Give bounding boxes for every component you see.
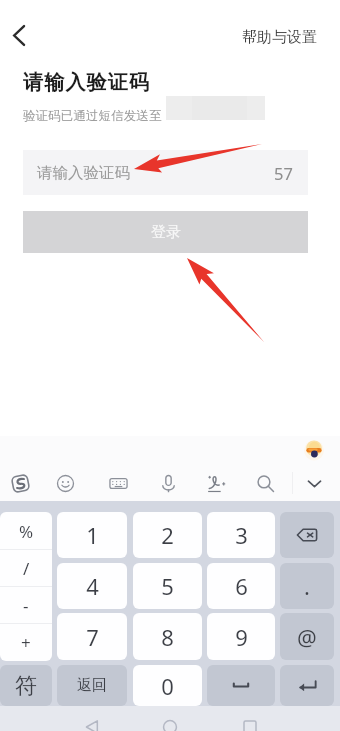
button[interactable]: Search: [249, 467, 281, 499]
staticText: 1: [86, 520, 99, 550]
button[interactable]: -: [0, 587, 52, 624]
staticText: 登录: [151, 223, 181, 242]
button[interactable]: 2: [133, 512, 202, 558]
button[interactable]: 请输入验证码: [23, 150, 308, 195]
button[interactable]: Emoji: [49, 467, 81, 499]
staticText: 57: [274, 162, 293, 184]
staticText: %: [19, 520, 34, 543]
button[interactable]: /: [0, 550, 52, 587]
button[interactable]: Home: [150, 720, 190, 731]
button[interactable]: 5: [133, 563, 202, 609]
button[interactable]: Space: [207, 665, 275, 706]
staticText: 6: [235, 571, 248, 601]
button[interactable]: Handwriting: [200, 467, 232, 499]
staticText: @: [297, 622, 317, 652]
staticText: 4: [86, 571, 99, 601]
button[interactable]: 登录: [23, 211, 308, 253]
staticText: 3: [235, 520, 248, 550]
button[interactable]: .: [280, 563, 334, 609]
button[interactable]: 符: [0, 665, 52, 706]
button[interactable]: 7: [57, 613, 127, 660]
staticText: 7: [86, 622, 99, 652]
staticText: 8: [161, 622, 174, 652]
button[interactable]: 6: [207, 563, 275, 609]
staticText: 0: [161, 671, 174, 701]
button[interactable]: 返回: [57, 665, 127, 706]
button[interactable]: 8: [133, 613, 202, 660]
button[interactable]: Keyboard: [102, 467, 134, 499]
button[interactable]: 0: [133, 665, 202, 706]
button[interactable]: Backspace: [280, 512, 334, 558]
button[interactable]: Back: [0, 13, 38, 57]
staticText: 5: [161, 571, 174, 601]
button[interactable]: @: [280, 613, 334, 660]
staticText: 返回: [77, 676, 107, 695]
button[interactable]: Voice input: [152, 467, 184, 499]
button[interactable]: Recents: [230, 721, 270, 731]
staticText: 2: [161, 520, 174, 550]
button[interactable]: Enter: [280, 665, 334, 706]
staticText: -: [23, 594, 29, 617]
button[interactable]: 1: [57, 512, 127, 558]
button[interactable]: 帮助与设置: [242, 28, 317, 47]
button[interactable]: %: [0, 512, 52, 550]
button[interactable]: Collapse keyboard: [298, 467, 330, 499]
staticText: +: [21, 631, 31, 654]
staticText: /: [23, 557, 30, 580]
button[interactable]: Sogou input: [4, 467, 36, 499]
button[interactable]: 9: [207, 613, 275, 660]
button[interactable]: 3: [207, 512, 275, 558]
staticText: 符: [15, 672, 37, 700]
staticText: 帮助与设置: [242, 28, 317, 47]
button[interactable]: 4: [57, 563, 127, 609]
staticText: 请输入验证码: [23, 70, 151, 95]
button[interactable]: Back: [72, 720, 112, 731]
button[interactable]: +: [0, 624, 52, 661]
staticText: .: [304, 571, 310, 601]
staticText: 验证码已通过短信发送至: [23, 108, 162, 124]
staticText: 请输入验证码: [37, 163, 130, 183]
staticText: 9: [235, 622, 248, 652]
